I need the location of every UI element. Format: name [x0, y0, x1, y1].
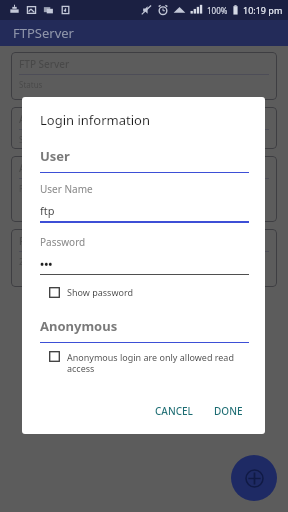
staticText: 100%	[207, 5, 228, 16]
staticText: User Name	[40, 182, 93, 196]
button[interactable]: Show password	[40, 285, 133, 299]
staticText: Status	[19, 134, 43, 144]
staticText: Anonymous login are only allowed read ac…	[67, 351, 249, 374]
staticText: Show password	[67, 286, 133, 298]
staticText: Status	[19, 79, 43, 90]
staticText: Login information	[40, 111, 150, 129]
staticText: •••	[40, 256, 53, 271]
button[interactable]: ftp	[40, 203, 249, 223]
staticText: 2121	[19, 256, 38, 267]
button[interactable]: Add server	[231, 455, 277, 501]
staticText: Anonymous	[40, 317, 118, 335]
staticText: ftp	[40, 203, 55, 218]
staticText: Remember	[19, 183, 61, 194]
staticText: Anonymous	[19, 112, 77, 126]
staticText: Password	[40, 235, 86, 249]
button[interactable]: Anonymous	[11, 107, 277, 149]
staticText: Automation	[19, 161, 76, 175]
button[interactable]: Anonymous login are only allowed read ac…	[40, 351, 249, 374]
staticText: DONE	[214, 404, 243, 418]
button[interactable]: Automation	[11, 156, 277, 222]
staticText: CANCEL	[155, 404, 193, 418]
button[interactable]: Port	[11, 229, 277, 287]
staticText: User	[40, 147, 70, 165]
button[interactable]: •••	[40, 256, 249, 275]
staticText: FTPServer	[13, 24, 74, 42]
staticText: FTP Server	[19, 57, 70, 71]
staticText: 10:19 pm	[243, 4, 283, 16]
button[interactable]: FTP Server	[11, 52, 277, 100]
button[interactable]: CANCEL	[149, 399, 199, 423]
button[interactable]: DONE	[208, 399, 249, 423]
staticText: Port	[19, 234, 40, 248]
